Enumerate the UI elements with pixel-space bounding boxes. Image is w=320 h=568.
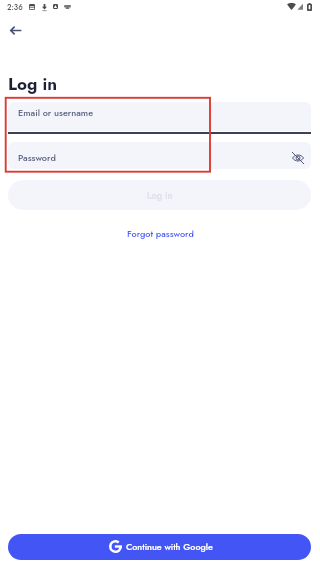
button[interactable]: Password <box>8 142 311 169</box>
button[interactable]: Forgot password <box>121 224 200 243</box>
staticText: Email or username <box>18 106 94 119</box>
button[interactable]: Show password <box>289 149 307 167</box>
button[interactable]: Back <box>1 16 29 44</box>
button[interactable]: Continue with Google <box>8 534 311 560</box>
staticText: Log in <box>8 72 57 97</box>
staticText: Log in <box>147 189 173 202</box>
staticText: 2:36 <box>7 2 23 13</box>
button[interactable]: Email or username <box>8 102 311 131</box>
staticText: Password <box>18 151 56 164</box>
staticText: Continue with Google <box>126 540 213 553</box>
